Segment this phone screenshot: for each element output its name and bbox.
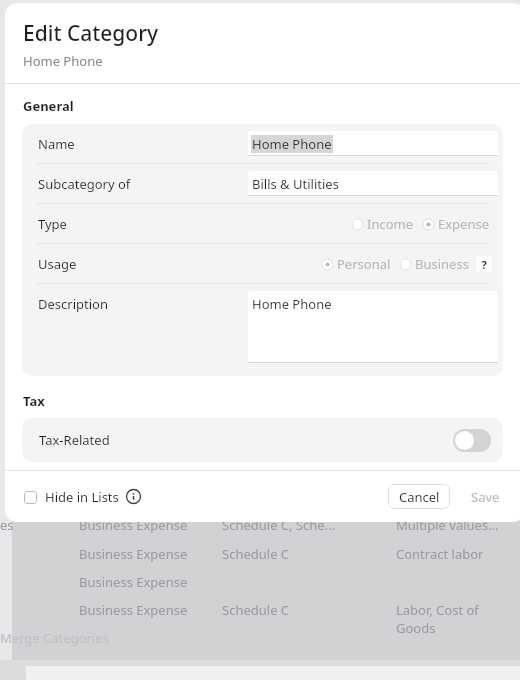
staticText: Expense <box>438 215 490 233</box>
staticText: Labor, Cost of Goods <box>396 601 520 637</box>
button[interactable]: Help <box>476 256 492 272</box>
staticText: Business Expense <box>79 545 188 563</box>
staticText: Home Phone <box>23 52 103 70</box>
button[interactable]: Subcategory of <box>22 164 503 203</box>
staticText: Business Expense <box>79 516 188 534</box>
staticText: Income <box>367 215 414 233</box>
staticText: Schedule C <box>222 601 290 619</box>
button[interactable]: Cancel <box>388 484 450 509</box>
staticText: Edit Category <box>23 19 159 48</box>
staticText: es <box>0 516 14 534</box>
staticText: Multiple values... <box>396 516 499 534</box>
staticText: Personal <box>337 255 391 273</box>
button[interactable]: Income <box>352 215 414 233</box>
button[interactable]: Personal <box>322 255 391 273</box>
staticText: Home Phone <box>252 295 332 313</box>
button[interactable]: Tax-Related toggle <box>453 429 491 452</box>
staticText: Usage <box>38 255 77 273</box>
staticText: Business <box>415 255 469 273</box>
staticText: Business Expense <box>79 573 188 591</box>
staticText: Tax <box>23 392 45 410</box>
staticText: Save <box>471 488 500 506</box>
staticText: Schedule C <box>222 545 290 563</box>
button[interactable]: Expense <box>423 215 490 233</box>
button[interactable]: Name <box>22 124 503 163</box>
staticText: Merge Categories <box>0 629 109 647</box>
staticText: Contract labor <box>396 545 484 563</box>
button[interactable]: Business <box>400 255 469 273</box>
staticText: ? <box>481 257 487 272</box>
staticText: Hide in Lists <box>45 488 119 506</box>
staticText: Description <box>38 295 108 313</box>
staticText: Schedule C, Sche... <box>222 516 336 534</box>
button[interactable]: Info <box>126 489 141 504</box>
button[interactable]: Description <box>22 284 503 376</box>
staticText: Tax-Related <box>39 431 110 449</box>
staticText: Type <box>38 215 67 233</box>
staticText: Name <box>38 135 75 153</box>
staticText: General <box>23 97 74 115</box>
button[interactable]: Tax-Related <box>22 418 503 462</box>
button[interactable]: Save <box>459 484 511 509</box>
staticText: Home Phone <box>252 135 332 153</box>
staticText: Cancel <box>399 488 440 506</box>
staticText: Subcategory of <box>38 175 131 193</box>
staticText: Business Expense <box>79 601 188 619</box>
staticText: Bills & Utilities <box>252 175 339 193</box>
button[interactable]: Hide in Lists <box>24 488 119 506</box>
